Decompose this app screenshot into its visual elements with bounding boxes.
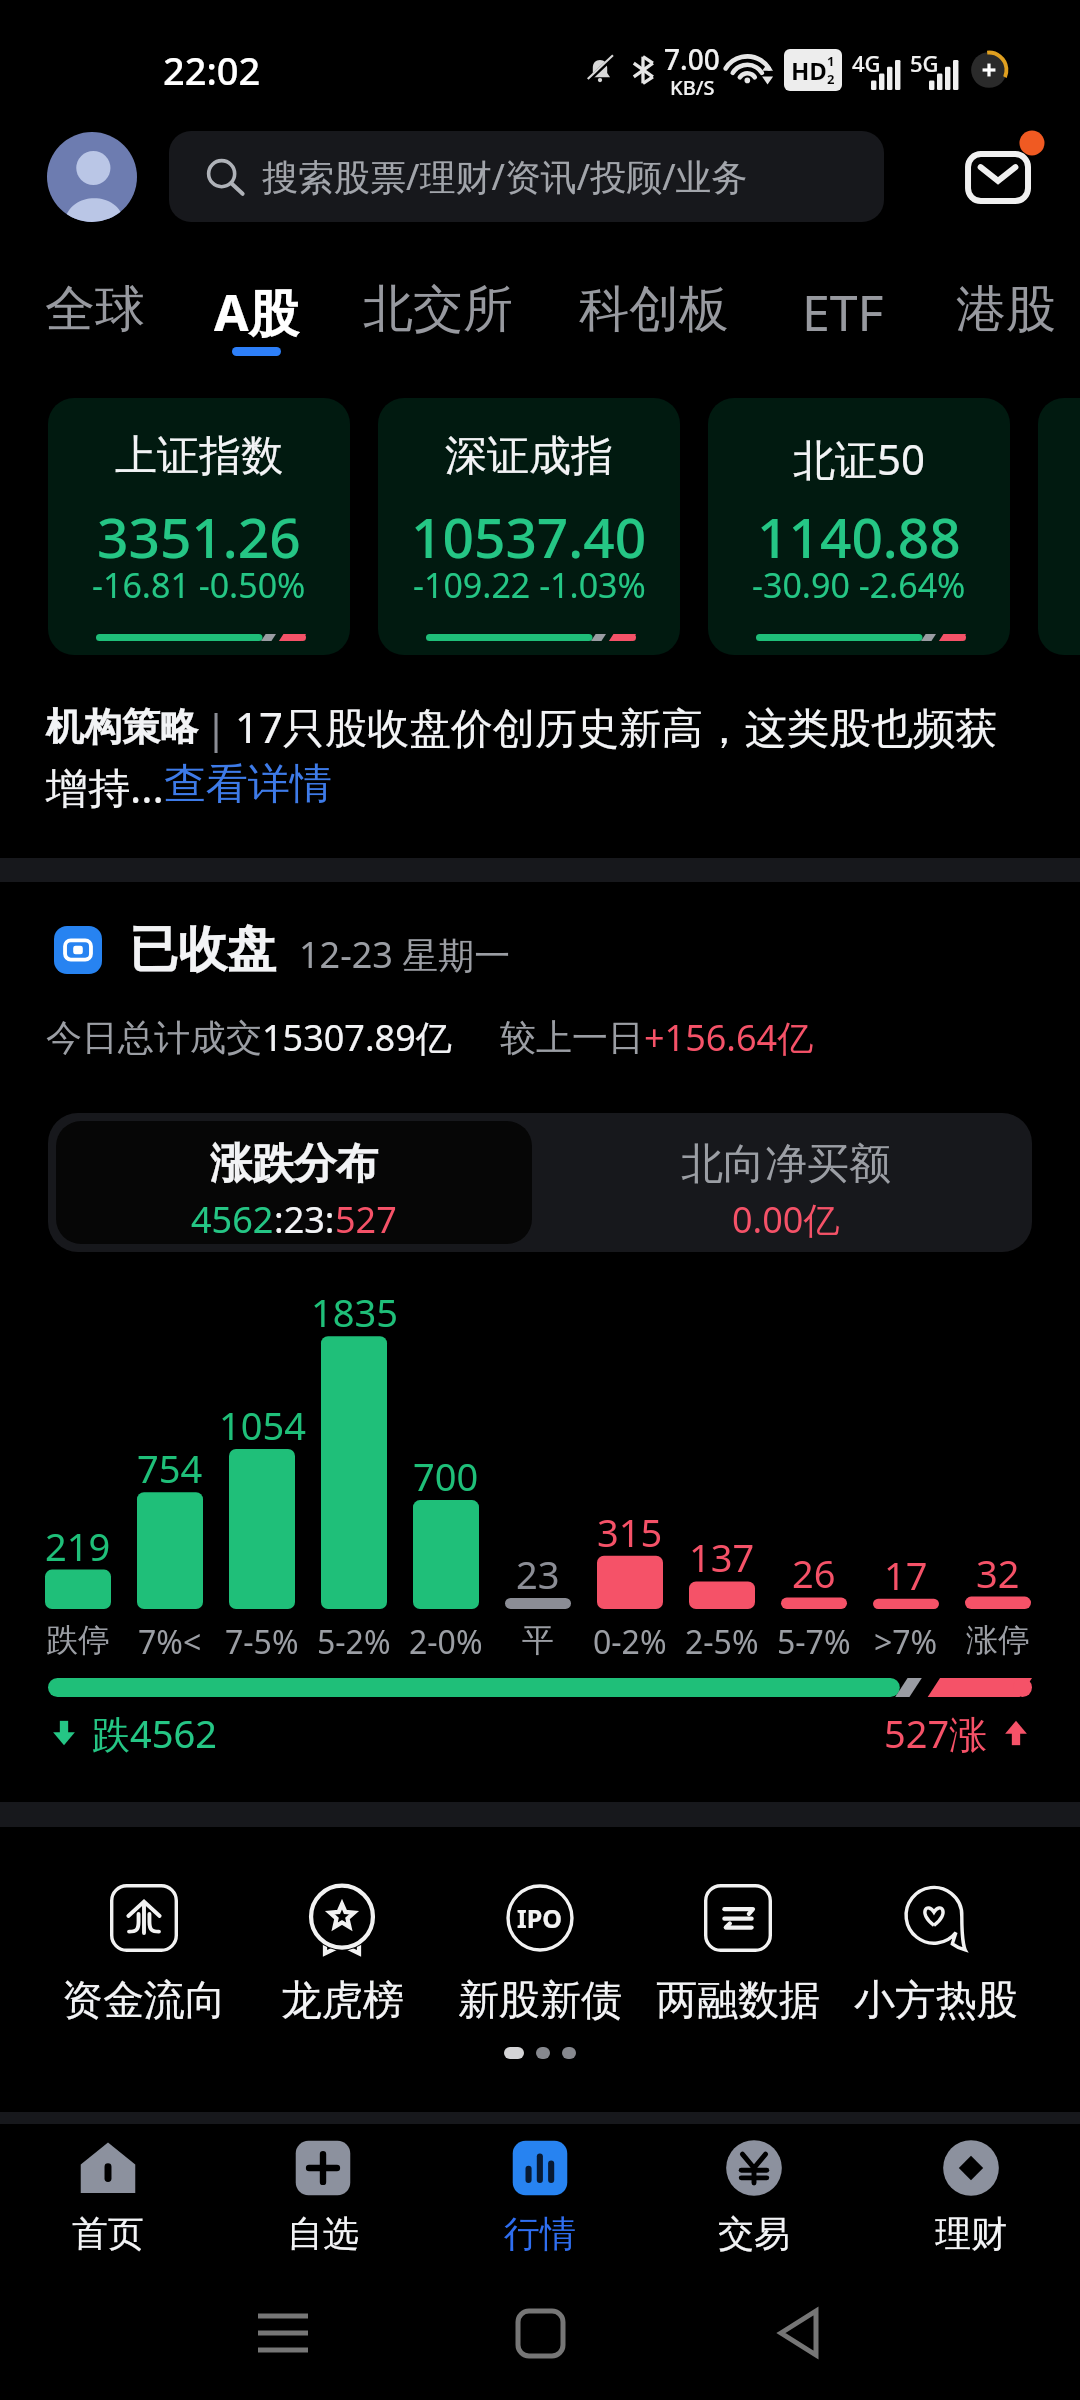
button[interactable]: 全球 (33, 278, 157, 362)
staticText: 22:02 (163, 44, 261, 96)
staticText: 北证50 (793, 430, 926, 487)
staticText: 5-2% (317, 1620, 391, 1664)
staticText: 涨跌分布 (210, 1138, 378, 1191)
staticText: -30.90 -2.64% (752, 562, 966, 608)
staticText: 26 (792, 1547, 836, 1599)
staticText: | (205, 700, 228, 754)
staticText: 2 (827, 70, 835, 88)
staticText: 12-23 星期一 (299, 930, 511, 979)
staticText: 10537.40 (411, 499, 647, 574)
staticText: 全球 (45, 278, 145, 341)
staticText: 23 (516, 1548, 560, 1600)
staticText: 1140.88 (757, 499, 961, 574)
staticText: 龙虎榜 (281, 1975, 404, 2027)
button[interactable]: Messages (950, 128, 1042, 220)
staticText: 北向净买额 (681, 1138, 891, 1191)
staticText: 上证指数 (115, 430, 283, 483)
staticText: ETF (802, 278, 884, 346)
staticText: 17只股收盘价创历史新高，这类股也频获 (235, 698, 998, 755)
staticText: 1054 (219, 1399, 306, 1451)
staticText: 1835 (311, 1286, 398, 1338)
button[interactable]: IPO (441, 1870, 639, 2030)
staticText: 4562 (191, 1195, 274, 1244)
staticText: 0.00亿 (732, 1195, 840, 1244)
staticText: 涨停 (966, 1620, 1030, 1660)
staticText: 5G (910, 48, 939, 78)
staticText: 行情 (504, 2211, 576, 2256)
staticText: -16.81 -0.50% (92, 562, 306, 608)
staticText: 137 (689, 1531, 755, 1583)
staticText: 3351.26 (97, 499, 301, 574)
button[interactable]: Profile (47, 132, 137, 222)
button[interactable]: 理财 (863, 2124, 1079, 2266)
staticText: 7-5% (225, 1620, 299, 1664)
staticText: 首页 (72, 2211, 144, 2256)
staticText: 北交所 (363, 278, 513, 341)
button[interactable]: 两融数据 (639, 1870, 837, 2030)
staticText: 平 (522, 1620, 554, 1660)
staticText: 1 (827, 52, 835, 70)
staticText: 两融数据 (656, 1975, 820, 2027)
staticText: A股 (214, 278, 299, 346)
staticText: KB/S (670, 74, 715, 96)
button[interactable]: 搜索股票/理财/资讯/投顾/业务 (169, 131, 884, 222)
staticText: 2-5% (685, 1620, 759, 1664)
staticText: 跌停 (46, 1620, 110, 1660)
staticText: +156.64亿 (644, 1013, 814, 1062)
staticText: 较上一日 (500, 1015, 644, 1060)
button[interactable]: 小方热股 (837, 1870, 1035, 2030)
staticText: 理财 (935, 2211, 1007, 2256)
staticText: 5-7% (777, 1620, 851, 1664)
staticText: 527涨 (884, 1707, 988, 1759)
staticText: 自选 (287, 2211, 359, 2256)
staticText: 754 (137, 1442, 203, 1494)
staticText: 15307.89亿 (262, 1013, 452, 1062)
button[interactable]: 龙虎榜 (243, 1870, 441, 2030)
staticText: 资金流向 (62, 1975, 226, 2027)
button[interactable]: 资金流向 (45, 1870, 243, 2030)
button[interactable]: 上证指数 (48, 398, 350, 655)
button[interactable]: 涨跌分布 (56, 1121, 532, 1244)
staticText: HD (791, 54, 827, 87)
staticText: 深证成指 (445, 430, 613, 483)
button[interactable]: A股 (198, 278, 314, 362)
button[interactable]: 科创板 (569, 278, 739, 362)
staticText: 交易 (718, 2211, 790, 2256)
button[interactable]: 机构策略 (46, 698, 1036, 815)
button[interactable]: 深证成指 (378, 398, 680, 655)
staticText: 小方热股 (854, 1975, 1018, 2027)
staticText: >7% (874, 1620, 938, 1664)
staticText: 2-0% (409, 1620, 483, 1664)
staticText: 搜索股票/理财/资讯/投顾/业务 (262, 152, 748, 201)
staticText: 今日总计成交 (46, 1015, 262, 1060)
button[interactable]: 港股 (944, 278, 1068, 362)
staticText: 7%< (138, 1620, 202, 1664)
button[interactable]: ETF (784, 278, 902, 362)
button[interactable]: 交易 (646, 2124, 862, 2266)
staticText: 增持... (46, 758, 164, 815)
staticText: 700 (413, 1450, 479, 1502)
staticText: 科创板 (579, 278, 729, 341)
staticText: 0-2% (593, 1620, 667, 1664)
staticText: 已收盘 (129, 919, 276, 981)
staticText: 4G (852, 48, 881, 78)
staticText: 32 (976, 1547, 1020, 1599)
staticText: 查看详情 (164, 758, 332, 811)
button[interactable]: 自选 (215, 2124, 431, 2266)
staticText: IPO (517, 1901, 563, 1935)
staticText: 315 (597, 1506, 663, 1558)
staticText: 港股 (956, 278, 1056, 341)
staticText: -109.22 -1.03% (413, 562, 646, 608)
staticText: 7.00 (664, 40, 720, 78)
staticText: :23: (274, 1195, 335, 1244)
staticText: 17 (884, 1549, 928, 1601)
button[interactable]: 首页 (0, 2124, 216, 2266)
staticText: 219 (45, 1520, 111, 1572)
button[interactable]: 北交所 (353, 278, 523, 362)
staticText: 527 (335, 1195, 397, 1244)
button[interactable]: 行情 (432, 2124, 648, 2266)
button[interactable]: 北向净买额 (540, 1113, 1032, 1252)
staticText: 跌4562 (92, 1707, 217, 1759)
staticText: 机构策略 (46, 703, 198, 751)
button[interactable]: 北证50 (708, 398, 1010, 655)
